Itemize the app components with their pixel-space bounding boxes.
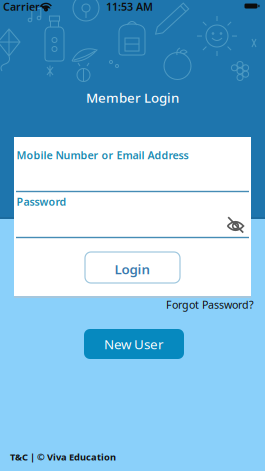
button[interactable] — [224, 215, 246, 235]
staticText: 11:53 AM — [106, 0, 153, 14]
staticText: Password — [16, 194, 66, 209]
staticText: New User — [104, 335, 164, 353]
button[interactable]: New User — [84, 329, 184, 359]
staticText: Member Login — [86, 89, 179, 106]
button[interactable]: Login — [85, 252, 180, 283]
button[interactable]: Forgot Password? — [166, 297, 254, 312]
staticText: T&C | © Viva Education — [10, 451, 116, 463]
button[interactable]: T&C | © Viva Education — [10, 451, 116, 463]
staticText: Login — [114, 260, 150, 278]
staticText: Forgot Password? — [166, 297, 254, 312]
staticText: Carrier — [3, 0, 40, 14]
staticText: Mobile Number or Email Address — [16, 148, 188, 162]
